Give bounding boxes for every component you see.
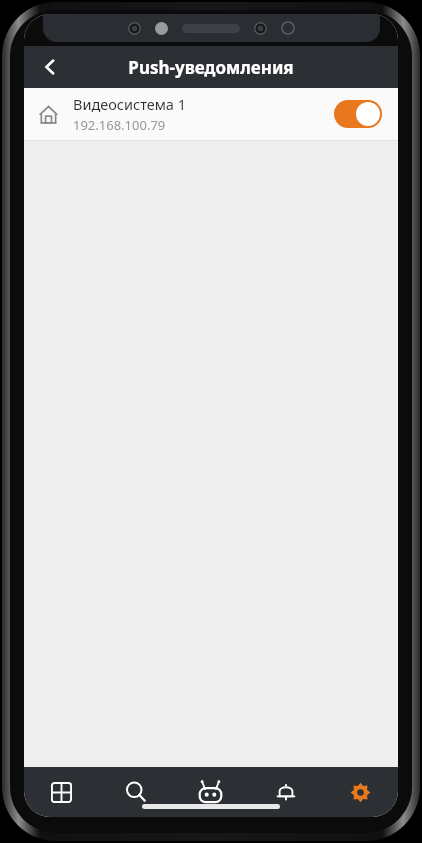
staticText: Push-уведомления bbox=[128, 56, 294, 79]
button[interactable]: Back bbox=[30, 47, 70, 87]
button[interactable]: Toggle push notifications bbox=[334, 100, 382, 128]
staticText: Видеосистема 1 bbox=[73, 94, 186, 114]
button[interactable]: Видеосистема 1 bbox=[24, 88, 398, 140]
button[interactable]: Search bbox=[98, 767, 173, 817]
button[interactable]: Notifications bbox=[248, 767, 323, 817]
button[interactable]: Settings bbox=[323, 767, 398, 817]
button[interactable]: Assistant bbox=[173, 767, 248, 817]
staticText: 192.168.100.79 bbox=[73, 116, 166, 134]
button[interactable]: Dashboard bbox=[24, 767, 98, 817]
